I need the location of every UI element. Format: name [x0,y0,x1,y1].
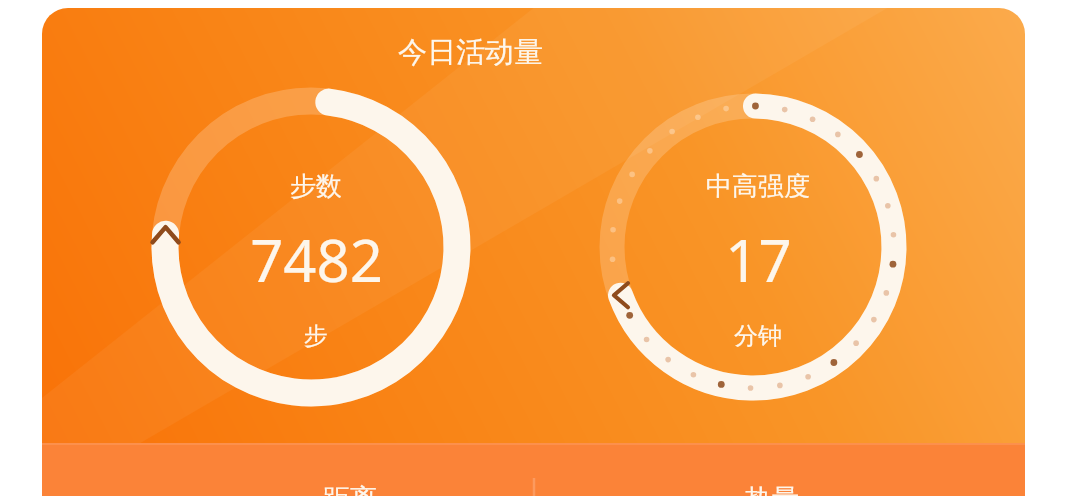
button[interactable]: 热量 [682,466,862,496]
staticText: 距离 [323,482,377,496]
staticText: 分钟 [734,321,782,351]
staticText: 步 [304,321,328,351]
button[interactable]: 步数 [42,8,1025,496]
staticText: 7482 [250,220,383,288]
staticText: 步数 [290,170,342,203]
staticText: 今日活动量 [398,34,543,71]
staticText: 热量 [745,482,799,496]
staticText: 17 [725,220,792,288]
staticText: 中高强度 [706,170,810,203]
button[interactable]: 距离 [260,466,440,496]
